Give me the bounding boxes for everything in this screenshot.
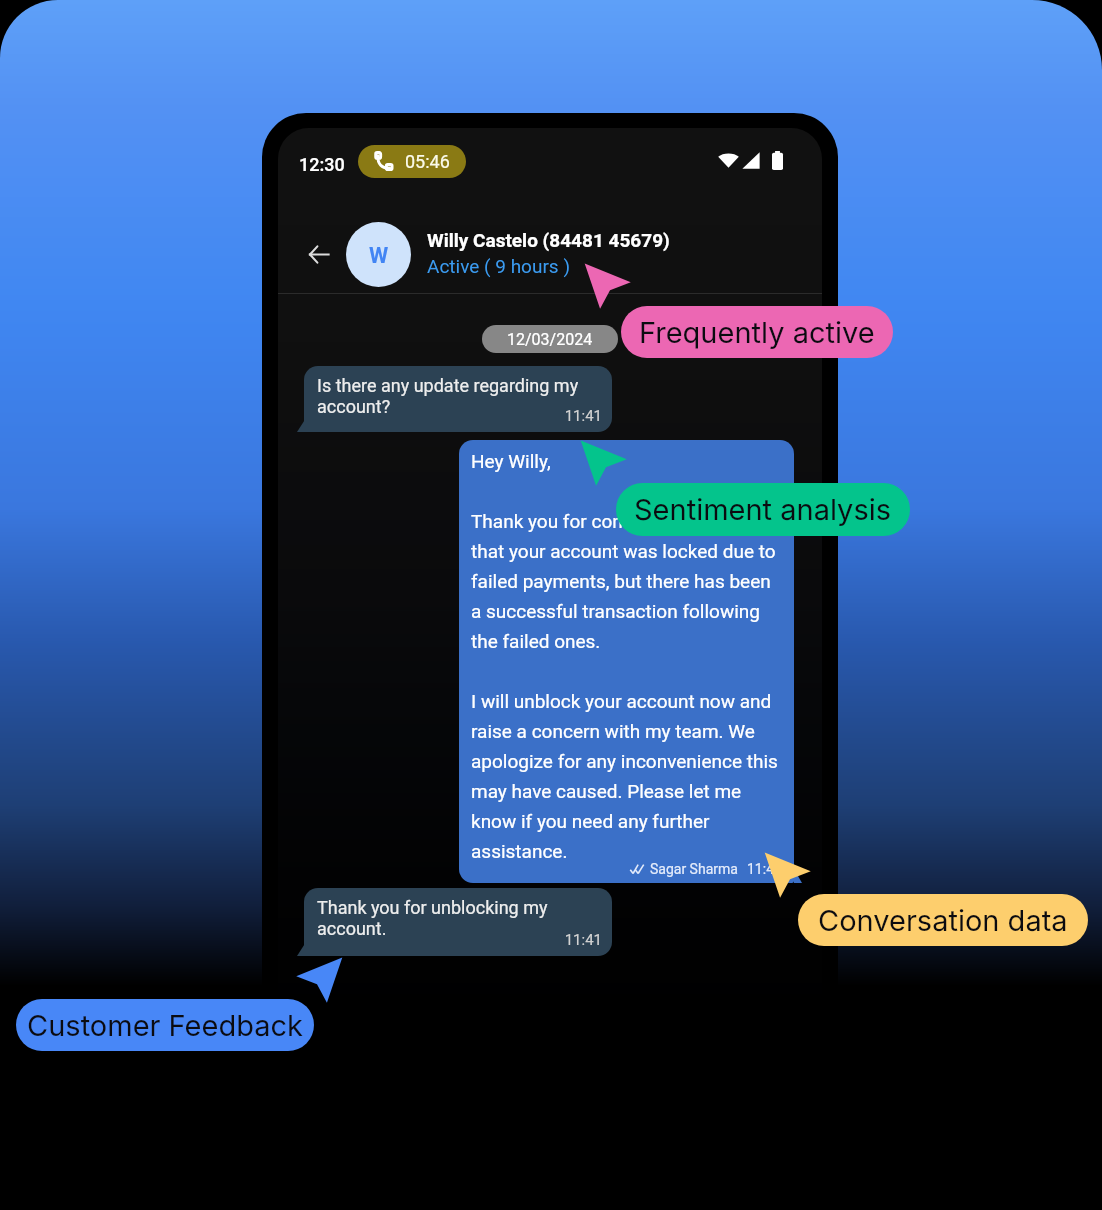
button[interactable]: Thank you for unblocking my account. <box>304 888 612 956</box>
button[interactable]: Sentiment analysis <box>616 483 910 536</box>
staticText: Frequently active <box>639 315 875 350</box>
button[interactable]: Hey Willy, Thank you for confirming that… <box>459 440 794 883</box>
staticText: 12:30 <box>299 154 345 175</box>
staticText: Is there any update regarding my account… <box>317 375 579 418</box>
staticText: Hey Willy, Thank you for confirming that… <box>471 450 778 862</box>
staticText: Conversation data <box>818 903 1068 938</box>
staticText: 11:41 <box>564 931 602 949</box>
button[interactable]: Back <box>296 232 341 277</box>
staticText: Thank you for unblocking my account. <box>317 897 548 940</box>
staticText: 12/03/2024 <box>507 330 593 349</box>
button[interactable]: Is there any update regarding my account… <box>304 366 612 432</box>
staticText: 11:41 <box>747 861 782 877</box>
staticText: Active ( 9 hours ) <box>427 255 571 277</box>
button[interactable]: 12/03/2024 <box>482 325 618 353</box>
staticText: Customer Feedback <box>27 1008 303 1043</box>
button[interactable]: Conversation data <box>798 894 1088 946</box>
button[interactable]: Customer Feedback <box>16 999 314 1051</box>
staticText: Sagar Sharma <box>650 861 738 877</box>
button[interactable]: W <box>346 222 411 287</box>
staticText: Sentiment analysis <box>634 492 892 527</box>
button[interactable]: 05:46 <box>358 145 466 178</box>
staticText: W <box>369 243 389 269</box>
staticText: 11:41 <box>564 407 602 425</box>
button[interactable]: Frequently active <box>621 306 893 358</box>
staticText: 05:46 <box>405 151 450 172</box>
staticText: Willy Castelo (84481 45679) <box>427 229 670 251</box>
